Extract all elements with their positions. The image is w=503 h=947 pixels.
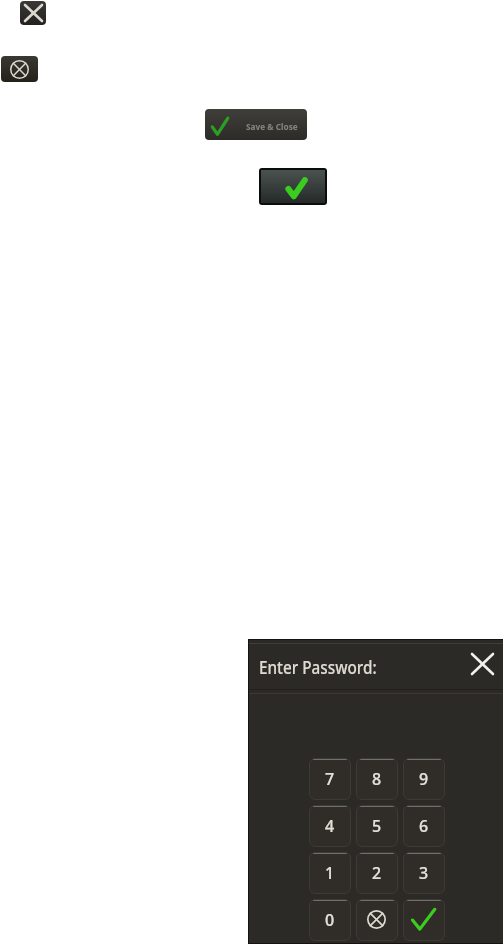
staticText: 5 xyxy=(372,815,382,837)
staticText: 9 xyxy=(419,768,429,790)
staticText: Enter Password: xyxy=(259,655,377,680)
button[interactable]: Backspace xyxy=(356,899,398,941)
staticText: Save & Close xyxy=(246,120,298,132)
button[interactable]: Enter xyxy=(403,899,445,941)
staticText: 7 xyxy=(325,768,335,790)
button[interactable]: Close dialog xyxy=(465,646,500,681)
button[interactable]: 3 xyxy=(403,852,445,894)
button[interactable]: 8 xyxy=(356,758,398,800)
button[interactable]: 4 xyxy=(309,805,351,847)
button[interactable]: 0 xyxy=(309,899,351,941)
button[interactable]: Save & Close xyxy=(205,109,307,140)
button[interactable]: Close xyxy=(20,1,46,25)
button[interactable]: 2 xyxy=(356,852,398,894)
button[interactable]: Confirm xyxy=(261,170,325,203)
button[interactable]: Clear entry xyxy=(1,56,38,82)
button[interactable]: 5 xyxy=(356,805,398,847)
staticText: 2 xyxy=(372,862,382,884)
button[interactable]: 6 xyxy=(403,805,445,847)
staticText: 8 xyxy=(372,768,382,790)
button[interactable]: 7 xyxy=(309,758,351,800)
staticText: 4 xyxy=(325,815,335,837)
staticText: 6 xyxy=(419,815,429,837)
staticText: 1 xyxy=(325,862,335,884)
staticText: 3 xyxy=(419,862,429,884)
button[interactable]: 1 xyxy=(309,852,351,894)
button[interactable]: 9 xyxy=(403,758,445,800)
staticText: 0 xyxy=(325,909,335,931)
